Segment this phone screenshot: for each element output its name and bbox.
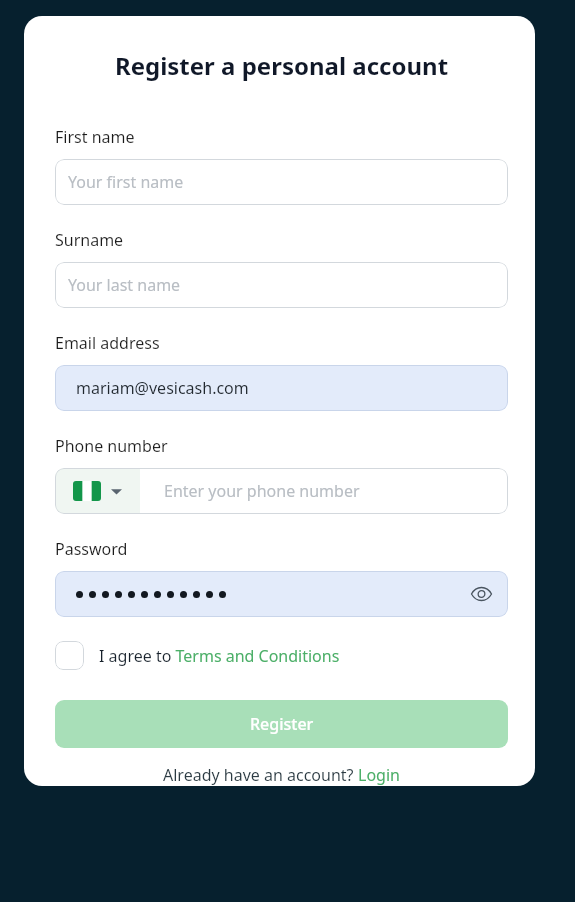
staticText: Login bbox=[358, 764, 400, 786]
button[interactable]: Show password bbox=[55, 571, 508, 617]
staticText: Phone number bbox=[55, 435, 168, 457]
button[interactable]: Your first name bbox=[55, 159, 508, 205]
staticText: mariam@vesicash.com bbox=[76, 377, 249, 399]
button[interactable]: I agree to Terms and Conditions bbox=[55, 639, 340, 672]
staticText: First name bbox=[55, 126, 135, 148]
staticText: Register bbox=[250, 713, 314, 735]
button[interactable]: Your last name bbox=[55, 262, 508, 308]
button[interactable]: Login bbox=[358, 764, 400, 786]
button[interactable]: Enter your phone number bbox=[140, 468, 508, 514]
button[interactable]: Register bbox=[55, 700, 508, 748]
staticText: I agree to Terms and Conditions bbox=[99, 645, 340, 667]
staticText: Your last name bbox=[68, 274, 181, 296]
button[interactable]: Select country code bbox=[55, 468, 140, 514]
staticText: Surname bbox=[55, 229, 124, 251]
staticText: Your first name bbox=[68, 171, 184, 193]
button[interactable]: mariam@vesicash.com bbox=[55, 365, 508, 411]
staticText: Email address bbox=[55, 332, 160, 354]
staticText: Already have an account? bbox=[163, 764, 358, 786]
button[interactable]: Show password bbox=[468, 581, 494, 607]
staticText: Password bbox=[55, 538, 128, 560]
staticText: Register a personal account bbox=[55, 49, 508, 82]
staticText: Enter your phone number bbox=[164, 480, 360, 502]
